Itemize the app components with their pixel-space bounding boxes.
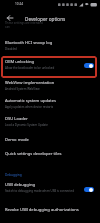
staticText: Bluetooth HCI snoop log (5, 40, 53, 46)
button[interactable]: DSU Loader (0, 113, 100, 127)
staticText: Disabled (5, 47, 17, 51)
button[interactable]: Toggle (84, 63, 94, 68)
button[interactable]: Bluetooth HCI snoop log (0, 37, 100, 51)
staticText: Revoke USB debugging authorizations (5, 207, 79, 213)
button[interactable]: Revoke USB debugging authorizations (0, 204, 100, 214)
staticText: WebView implementation (5, 80, 55, 86)
button[interactable]: Toggle (84, 187, 94, 192)
button[interactable]: Automatic system updates (0, 95, 100, 109)
staticText: Apply updates when device restarts (5, 105, 54, 109)
staticText: Switch to debugging mode when USB is con… (5, 189, 74, 193)
staticText: Load a Dynamic System Update (5, 123, 48, 127)
button[interactable]: WebView implementation (0, 77, 100, 91)
staticText: Demo mode (5, 137, 29, 143)
button[interactable]: Quick settings developer tiles (0, 148, 100, 158)
staticText: USB debugging (5, 182, 35, 188)
staticText: Allow the bootloader to be unlocked (5, 66, 55, 70)
button[interactable]: OEM unlocking (0, 56, 100, 70)
staticText: DSU Loader (5, 116, 28, 122)
staticText: OEM unlocking (5, 59, 35, 65)
staticText: 10:24 (15, 2, 24, 6)
staticText: Android System WebView (5, 87, 40, 91)
staticText: can (5, 25, 10, 29)
staticText: These settings are intended (5, 21, 43, 25)
staticText: Quick settings developer tiles (5, 151, 62, 157)
staticText: Developer options (25, 16, 66, 22)
button[interactable]: Back (5, 13, 14, 22)
staticText: Debugging (5, 173, 22, 177)
button[interactable]: Demo mode (0, 134, 100, 144)
button[interactable]: USB debugging (0, 179, 100, 197)
staticText: Automatic system updates (5, 98, 57, 104)
